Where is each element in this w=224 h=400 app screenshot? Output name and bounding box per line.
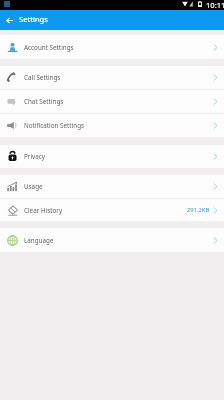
staticText: Clear History [24, 206, 63, 215]
staticText: 10:11 [206, 0, 224, 10]
button[interactable]: Back [0, 10, 19, 30]
button[interactable]: Call Settings [0, 66, 224, 89]
button[interactable]: Privacy [0, 145, 224, 168]
staticText: Privacy [24, 152, 46, 161]
staticText: 291.2KB [187, 206, 210, 214]
staticText: Notification Settings [24, 121, 85, 130]
staticText: Chat Settings [24, 97, 64, 106]
staticText: Settings [19, 14, 48, 24]
staticText: Account Settings [24, 43, 74, 52]
button[interactable]: Account Settings [0, 35, 224, 59]
staticText: Call Settings [24, 73, 61, 82]
button[interactable]: Usage [0, 175, 224, 198]
button[interactable]: Language [0, 228, 224, 252]
staticText: Language [24, 236, 54, 245]
staticText: Usage [24, 182, 43, 191]
button[interactable]: Notification Settings [0, 114, 224, 137]
button[interactable]: Clear History [0, 199, 224, 221]
button[interactable]: Chat Settings [0, 90, 224, 113]
